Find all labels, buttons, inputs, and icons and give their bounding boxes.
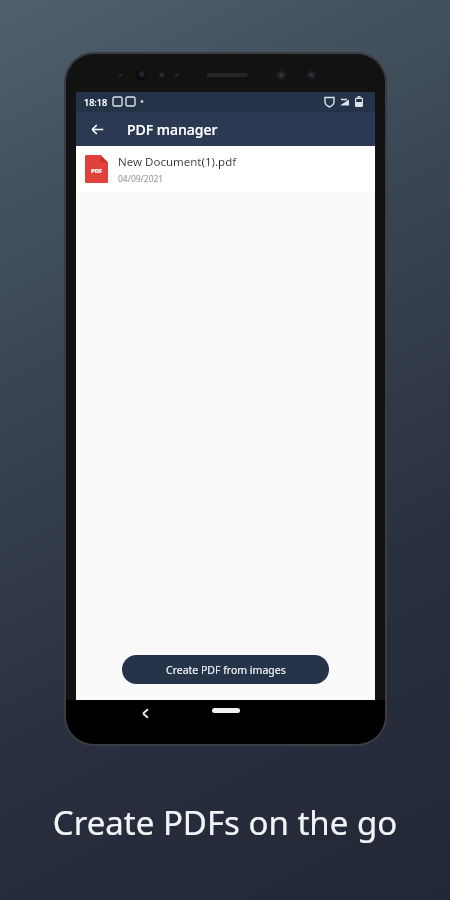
- button[interactable]: PDF: [76, 146, 375, 192]
- staticText: 18:18: [84, 96, 108, 108]
- button[interactable]: Home: [212, 708, 240, 713]
- button[interactable]: Create PDF from images: [122, 655, 329, 684]
- staticText: PDF manager: [127, 120, 218, 139]
- staticText: PDF: [91, 167, 103, 175]
- staticText: Create PDF from images: [166, 663, 286, 677]
- staticText: 04/09/2021: [118, 173, 164, 185]
- staticText: New Document(1).pdf: [118, 154, 237, 170]
- button[interactable]: Back: [84, 116, 110, 142]
- staticText: Create PDFs on the go: [0, 800, 450, 845]
- button[interactable]: Back: [132, 700, 158, 726]
